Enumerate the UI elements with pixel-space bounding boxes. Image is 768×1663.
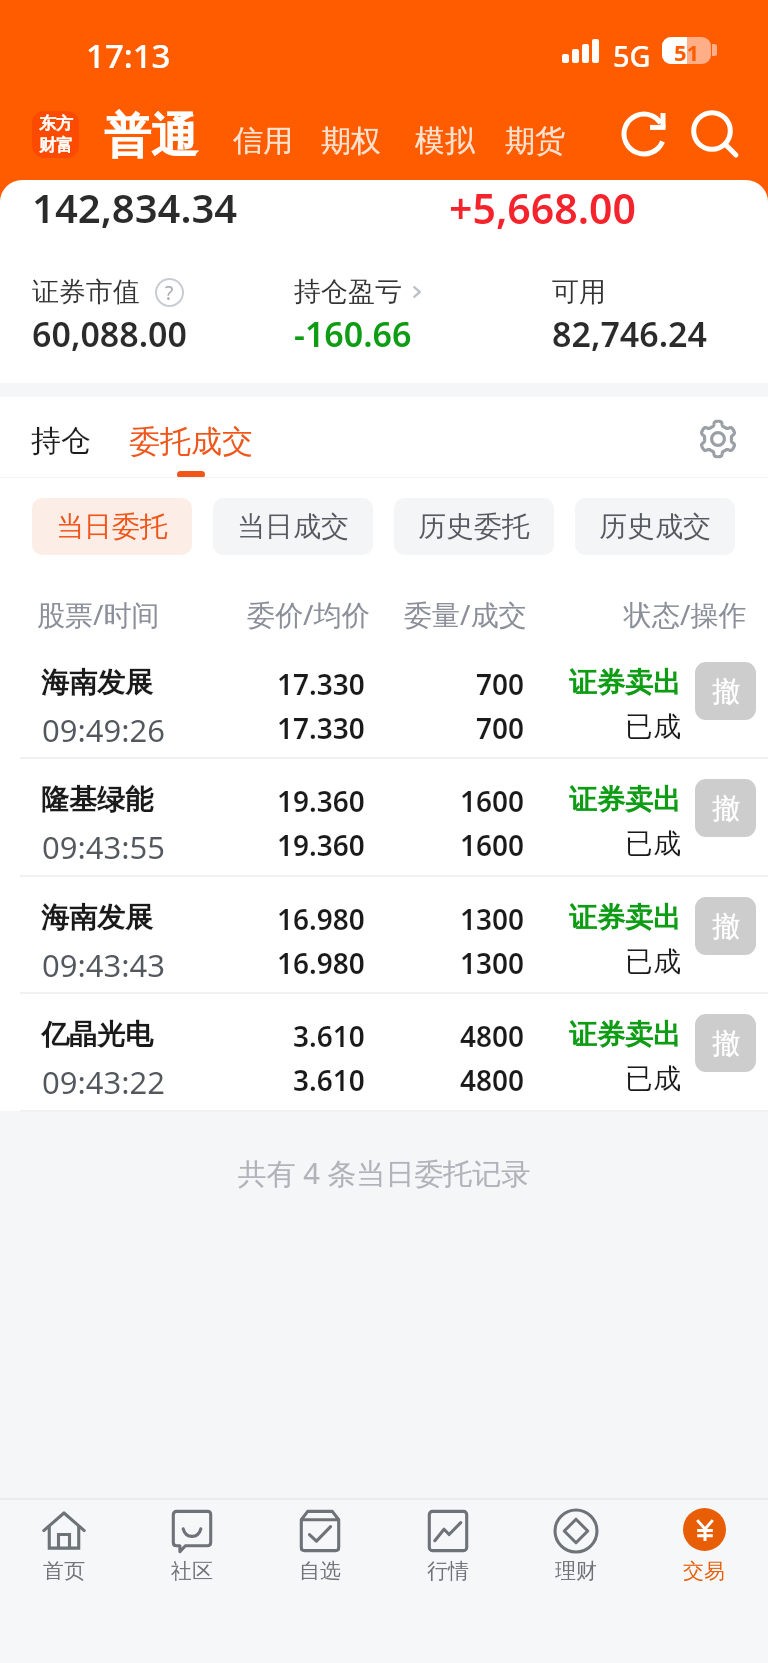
staticText: 隆基绿能 — [41, 782, 153, 817]
staticText: 历史成交 — [599, 509, 711, 544]
staticText: 19.360 — [277, 782, 365, 820]
button[interactable]: 当日委托 — [32, 498, 192, 555]
staticText: 09:43:43 — [42, 944, 166, 986]
staticText: ? — [165, 280, 174, 306]
staticText: 1300 — [460, 900, 525, 938]
staticText: 证券卖出 — [569, 782, 681, 817]
staticText: 当日成交 — [237, 509, 349, 544]
staticText: 82,746.24 — [552, 311, 708, 357]
staticText: 期权 — [321, 122, 381, 160]
staticText: 撤 — [712, 791, 740, 826]
staticText: 持仓盈亏 — [294, 275, 402, 309]
staticText: 17.330 — [277, 665, 365, 703]
staticText: 普通 — [104, 107, 198, 166]
staticText: 撤 — [712, 1026, 740, 1061]
staticText: 社区 — [171, 1558, 213, 1584]
button[interactable]: 持仓 — [31, 422, 91, 460]
button[interactable]: 信用 — [233, 122, 293, 160]
staticText: 可用 — [552, 275, 606, 309]
staticText: 已成 — [625, 826, 681, 861]
staticText: 1300 — [460, 944, 525, 982]
button[interactable]: 当日成交 — [213, 498, 373, 555]
button[interactable]: 可用 — [552, 275, 708, 357]
staticText: 委托成交 — [129, 422, 253, 461]
button[interactable]: 撤单 — [695, 662, 756, 720]
staticText: 已成 — [625, 1061, 681, 1096]
button[interactable]: 模拟 — [415, 122, 475, 160]
staticText: 51 — [674, 37, 700, 64]
staticText: 1600 — [460, 782, 525, 820]
staticText: 证券卖出 — [569, 665, 681, 700]
button[interactable]: 隆基绿能 — [0, 757, 768, 875]
staticText: 142,834.34 — [32, 180, 238, 234]
button[interactable]: 理财 — [512, 1498, 640, 1663]
staticText: 19.360 — [277, 826, 365, 864]
staticText: 4800 — [460, 1017, 525, 1055]
staticText: 行情 — [427, 1558, 469, 1584]
staticText: 海南发展 — [41, 900, 153, 935]
staticText: 首页 — [43, 1558, 85, 1584]
button[interactable]: 海南发展 — [0, 640, 768, 758]
button[interactable]: 行情 — [384, 1498, 512, 1663]
staticText: 信用 — [233, 122, 293, 160]
button[interactable]: 撤单 — [695, 1014, 756, 1072]
button[interactable]: 社区 — [128, 1498, 256, 1663]
staticText: 东方 — [39, 113, 73, 134]
staticText: -160.66 — [294, 311, 412, 357]
staticText: 17:13 — [86, 33, 171, 78]
button[interactable]: 首页 — [0, 1498, 128, 1663]
staticText: 财富 — [39, 135, 73, 156]
staticText: 3.610 — [293, 1061, 365, 1099]
staticText: 09:43:55 — [42, 826, 166, 868]
staticText: 1600 — [460, 826, 525, 864]
staticText: 证券卖出 — [569, 1017, 681, 1052]
staticText: 模拟 — [415, 122, 475, 160]
staticText: 撤 — [712, 674, 740, 709]
button[interactable]: 历史委托 — [394, 498, 554, 555]
staticText: 已成 — [625, 709, 681, 744]
staticText: 5G — [613, 36, 651, 75]
button[interactable]: 亿晶光电 — [0, 992, 768, 1110]
staticText: 证券市值 — [32, 275, 140, 309]
staticText: 自选 — [299, 1558, 341, 1584]
button[interactable]: Settings — [694, 415, 742, 463]
button[interactable]: 自选 — [256, 1498, 384, 1663]
button[interactable]: 历史成交 — [575, 498, 735, 555]
button[interactable]: 交易 — [640, 1498, 768, 1663]
button[interactable]: 期权 — [321, 122, 381, 160]
button[interactable]: 证券市值 — [32, 275, 188, 357]
staticText: 4800 — [460, 1061, 525, 1099]
staticText: 历史委托 — [418, 509, 530, 544]
button[interactable]: 持仓盈亏 — [294, 275, 427, 357]
staticText: 亿晶光电 — [41, 1017, 153, 1052]
staticText: 撤 — [712, 909, 740, 944]
staticText: 海南发展 — [41, 665, 153, 700]
button[interactable]: Refresh — [617, 107, 671, 161]
staticText: 交易 — [683, 1558, 725, 1584]
button[interactable]: 撤单 — [695, 897, 756, 955]
staticText: 理财 — [555, 1558, 597, 1584]
staticText: 700 — [476, 709, 525, 747]
staticText: 16.980 — [277, 944, 365, 982]
button[interactable]: 东方财富 — [32, 111, 79, 158]
button[interactable]: 期货 — [505, 122, 565, 160]
staticText: 委量/成交 — [404, 595, 527, 633]
button[interactable]: 委托成交 — [129, 422, 253, 461]
staticText: 09:43:22 — [42, 1061, 166, 1103]
staticText: 股票/时间 — [37, 595, 160, 633]
staticText: 700 — [476, 665, 525, 703]
staticText: 持仓 — [31, 422, 91, 460]
button[interactable]: 撤单 — [695, 779, 756, 837]
staticText: 共有 4 条当日委托记录 — [0, 1153, 768, 1193]
staticText: 证券卖出 — [569, 900, 681, 935]
staticText: 17.330 — [277, 709, 365, 747]
staticText: 状态/操作 — [624, 595, 747, 633]
button[interactable]: Search — [685, 105, 739, 159]
button[interactable]: 普通 — [104, 107, 198, 166]
staticText: 16.980 — [277, 900, 365, 938]
button[interactable]: 海南发展 — [0, 875, 768, 993]
staticText: 3.610 — [293, 1017, 365, 1055]
staticText: 当日委托 — [56, 509, 168, 544]
staticText: 09:49:26 — [42, 709, 166, 751]
staticText: 已成 — [625, 944, 681, 979]
